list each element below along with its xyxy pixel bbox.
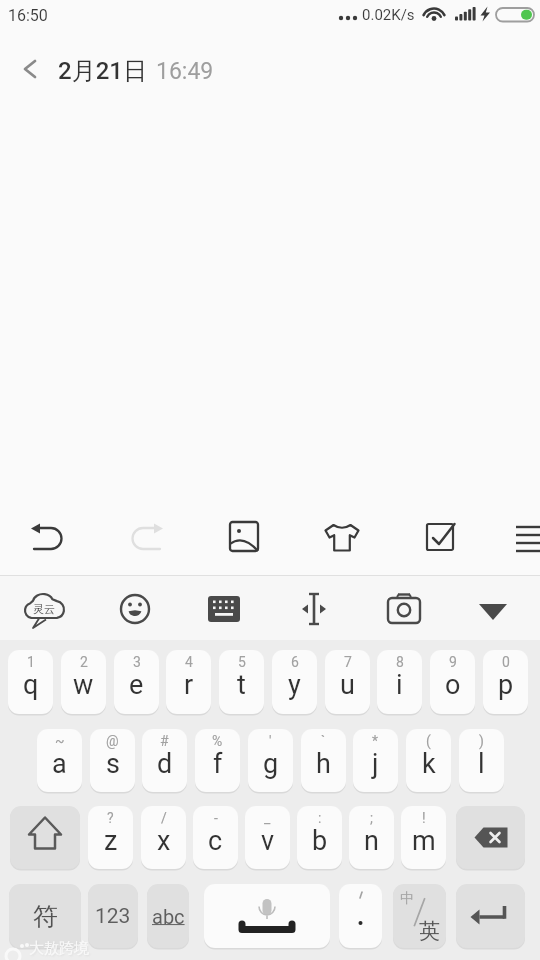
staticText: 2 — [80, 654, 88, 670]
button[interactable]: ? — [88, 806, 133, 869]
staticText: ; — [370, 810, 373, 826]
button[interactable]: 5 — [219, 650, 264, 714]
staticText: a — [52, 748, 67, 780]
staticText: z — [104, 825, 118, 857]
button[interactable]: abc — [147, 884, 189, 948]
button[interactable]: 2 — [61, 650, 106, 714]
staticText: 2月21日 — [58, 56, 147, 86]
button[interactable]: 123 — [88, 884, 138, 948]
staticText: 中 — [400, 890, 414, 908]
button[interactable]: / — [141, 806, 186, 869]
button[interactable]: 1 — [8, 650, 53, 714]
staticText: h — [316, 748, 331, 780]
staticText: p — [498, 669, 514, 701]
staticText: t — [237, 669, 246, 701]
staticText: n — [364, 825, 379, 857]
button[interactable]: - — [193, 806, 238, 869]
button[interactable] — [18, 513, 78, 573]
button[interactable] — [15, 578, 75, 638]
button[interactable]: 4 — [166, 650, 211, 714]
staticText: l — [478, 748, 485, 780]
staticText: d — [157, 748, 173, 780]
staticText: 英 — [419, 918, 440, 944]
staticText: ) — [479, 733, 484, 749]
button[interactable]: @ — [90, 729, 135, 792]
staticText: v — [261, 825, 275, 857]
staticText: 123 — [95, 904, 131, 929]
staticText: 6 — [291, 654, 299, 670]
button[interactable] — [214, 513, 274, 573]
staticText: j — [372, 748, 379, 780]
staticText: u — [340, 669, 355, 701]
staticText: e — [129, 669, 144, 701]
button[interactable] — [312, 513, 372, 573]
staticText: : — [318, 810, 322, 826]
staticText: 0 — [502, 654, 510, 670]
staticText: # — [160, 733, 169, 749]
staticText: _ — [264, 810, 271, 826]
button[interactable]: # — [142, 729, 187, 792]
button[interactable]: ` — [301, 729, 346, 792]
button[interactable]: 3 — [114, 650, 159, 714]
staticText: 0.02K/s — [362, 6, 415, 24]
staticText: c — [208, 825, 223, 857]
button[interactable]: ~ — [37, 729, 82, 792]
button[interactable] — [10, 806, 80, 869]
staticText: ( — [426, 733, 431, 749]
staticText: 16:49 — [156, 58, 214, 85]
staticText: f — [213, 748, 223, 780]
staticText: s — [106, 748, 120, 780]
staticText: k — [422, 748, 436, 780]
staticText: q — [23, 669, 39, 701]
staticText: b — [312, 825, 328, 857]
button[interactable]: _ — [245, 806, 290, 869]
button[interactable]: 7 — [325, 650, 370, 714]
staticText: 8 — [396, 654, 404, 670]
staticText: 大敖跨境 — [29, 939, 89, 958]
staticText: y — [288, 669, 301, 701]
button[interactable]: 6 — [272, 650, 317, 714]
button[interactable]: : — [297, 806, 342, 869]
button[interactable]: % — [195, 729, 240, 792]
staticText: 灵云 — [33, 602, 55, 616]
button[interactable] — [463, 578, 523, 638]
button[interactable]: ! — [401, 806, 446, 869]
staticText: * — [372, 733, 379, 749]
button[interactable]: ' — [248, 729, 293, 792]
button[interactable]: 2月21日 — [0, 30, 540, 105]
button[interactable] — [508, 513, 540, 573]
button[interactable] — [374, 578, 434, 638]
staticText: m — [412, 825, 436, 857]
staticText: abc — [152, 905, 185, 928]
button[interactable]: 中 — [393, 884, 446, 948]
staticText: 7 — [344, 654, 352, 670]
staticText: 9 — [449, 654, 457, 670]
button[interactable]: ) — [459, 729, 504, 792]
button[interactable]: 符 — [9, 884, 81, 948]
button[interactable] — [194, 578, 254, 638]
button[interactable] — [204, 884, 330, 948]
staticText: ~ — [55, 733, 65, 749]
button[interactable] — [116, 513, 176, 573]
staticText: ` — [321, 733, 326, 749]
button[interactable]: 9 — [430, 650, 475, 714]
staticText: x — [157, 825, 171, 857]
staticText: 1 — [27, 654, 35, 670]
button[interactable]: 0 — [483, 650, 528, 714]
staticText: / — [161, 810, 167, 826]
staticText: 16:50 — [8, 6, 48, 25]
button[interactable]: * — [353, 729, 398, 792]
button[interactable]: 8 — [377, 650, 422, 714]
button[interactable] — [456, 806, 525, 869]
button[interactable]: ( — [406, 729, 451, 792]
staticText: i — [396, 669, 403, 701]
staticText: ? — [107, 810, 114, 826]
button[interactable] — [339, 884, 382, 948]
staticText: - — [214, 810, 218, 826]
button[interactable] — [284, 578, 344, 638]
staticText: w — [73, 669, 94, 701]
button[interactable] — [105, 578, 165, 638]
button[interactable] — [456, 884, 525, 948]
button[interactable]: ; — [349, 806, 394, 869]
button[interactable] — [410, 513, 470, 573]
